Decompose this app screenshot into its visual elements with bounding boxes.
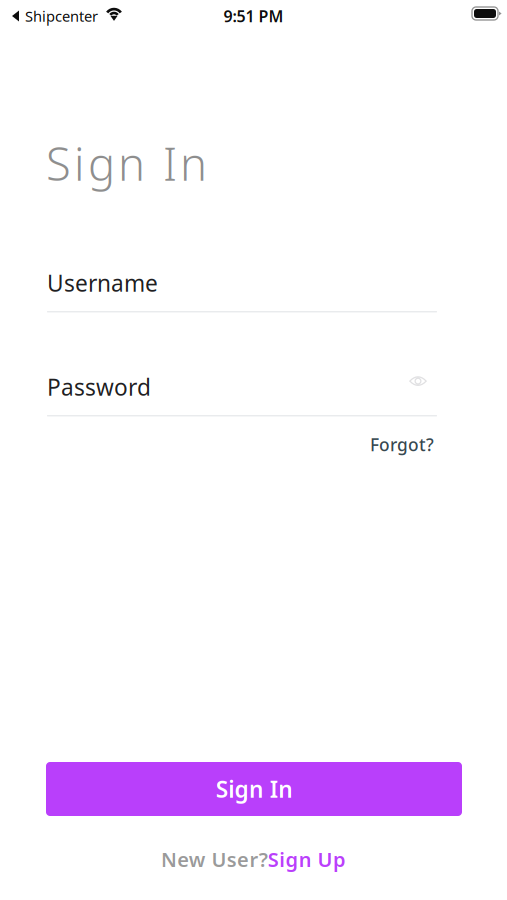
staticText: Password bbox=[47, 372, 151, 402]
staticText: Sign In bbox=[46, 133, 207, 193]
button[interactable]: Username bbox=[47, 268, 437, 312]
staticText: Sign Up bbox=[268, 846, 346, 873]
staticText: Username bbox=[47, 268, 158, 298]
staticText: Sign In bbox=[216, 774, 292, 804]
staticText: 9:51 PM bbox=[223, 5, 283, 27]
button[interactable]: New User? bbox=[155, 843, 352, 876]
button[interactable]: Forgot? bbox=[365, 428, 439, 461]
staticText: Shipcenter bbox=[25, 6, 98, 26]
staticText: Forgot? bbox=[370, 433, 434, 456]
staticText: New User? bbox=[161, 846, 268, 873]
button[interactable]: Show password bbox=[405, 372, 431, 393]
button[interactable]: Sign In bbox=[46, 762, 462, 816]
button[interactable]: Password bbox=[47, 372, 437, 416]
button[interactable]: Back to Shipcenter bbox=[12, 6, 98, 26]
